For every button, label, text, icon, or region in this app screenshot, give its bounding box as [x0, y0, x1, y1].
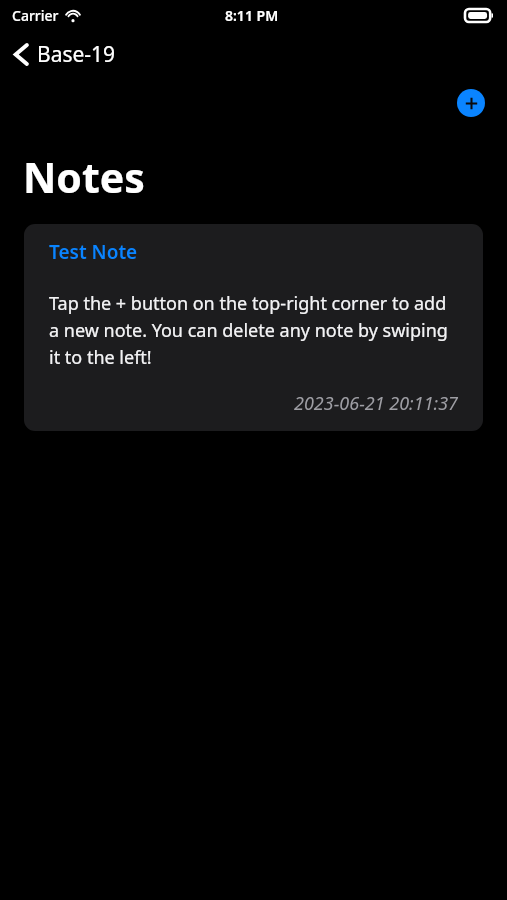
- staticText: Tap the + button on the top-right corner…: [49, 291, 458, 369]
- staticText: Test Note: [49, 239, 138, 265]
- staticText: Base-19: [37, 40, 116, 69]
- staticText: 2023-06-21 20:11:37: [49, 391, 458, 416]
- button[interactable]: Add note: [457, 89, 485, 117]
- button[interactable]: Base-19: [0, 34, 126, 75]
- staticText: Notes: [23, 149, 145, 205]
- staticText: 8:11 PM: [225, 6, 279, 25]
- button[interactable]: Test Note: [24, 224, 483, 431]
- staticText: Carrier: [12, 6, 59, 25]
